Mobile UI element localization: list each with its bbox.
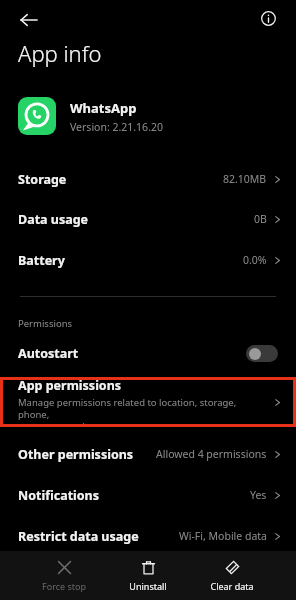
staticText: Autostart [18,345,246,362]
button[interactable]: Autostart [0,339,296,367]
button[interactable]: Uninstall [116,556,180,596]
staticText: Notifications [18,487,100,504]
button[interactable]: Other permissions [0,436,296,472]
staticText: 82.10MB [223,172,267,186]
staticText: Yes [250,488,267,502]
button[interactable]: Data usage [0,201,296,237]
button[interactable]: App permissions [0,377,296,427]
staticText: Permissions [18,317,73,330]
staticText: Clear data [210,580,254,592]
staticText: Other permissions [18,446,134,463]
staticText: Wi-Fi, Mobile data [179,529,267,543]
staticText: Storage [18,171,67,188]
button[interactable]: About [254,4,282,32]
staticText: 0.0% [243,253,267,267]
button[interactable]: Clear data [200,556,264,596]
staticText: App info [18,38,102,68]
button[interactable]: Force stop [32,556,96,596]
staticText: Restrict data usage [18,528,139,545]
staticText: Manage permissions related to location, … [18,396,266,427]
button[interactable]: Battery [0,242,296,278]
button[interactable]: Back [14,5,44,35]
button[interactable]: Notifications [0,477,296,513]
staticText: Battery [18,252,65,269]
staticText: Uninstall [129,580,167,592]
button[interactable]: Storage [0,161,296,197]
staticText: Version: 2.21.16.20 [70,120,163,134]
staticText: Force stop [42,580,86,592]
staticText: Data usage [18,211,89,228]
staticText: 0B [254,212,267,226]
button[interactable]: Restrict data usage [0,518,296,554]
staticText: WhatsApp [70,99,137,117]
staticText: Allowed 4 permissions [156,447,267,461]
staticText: App permissions [18,377,122,394]
